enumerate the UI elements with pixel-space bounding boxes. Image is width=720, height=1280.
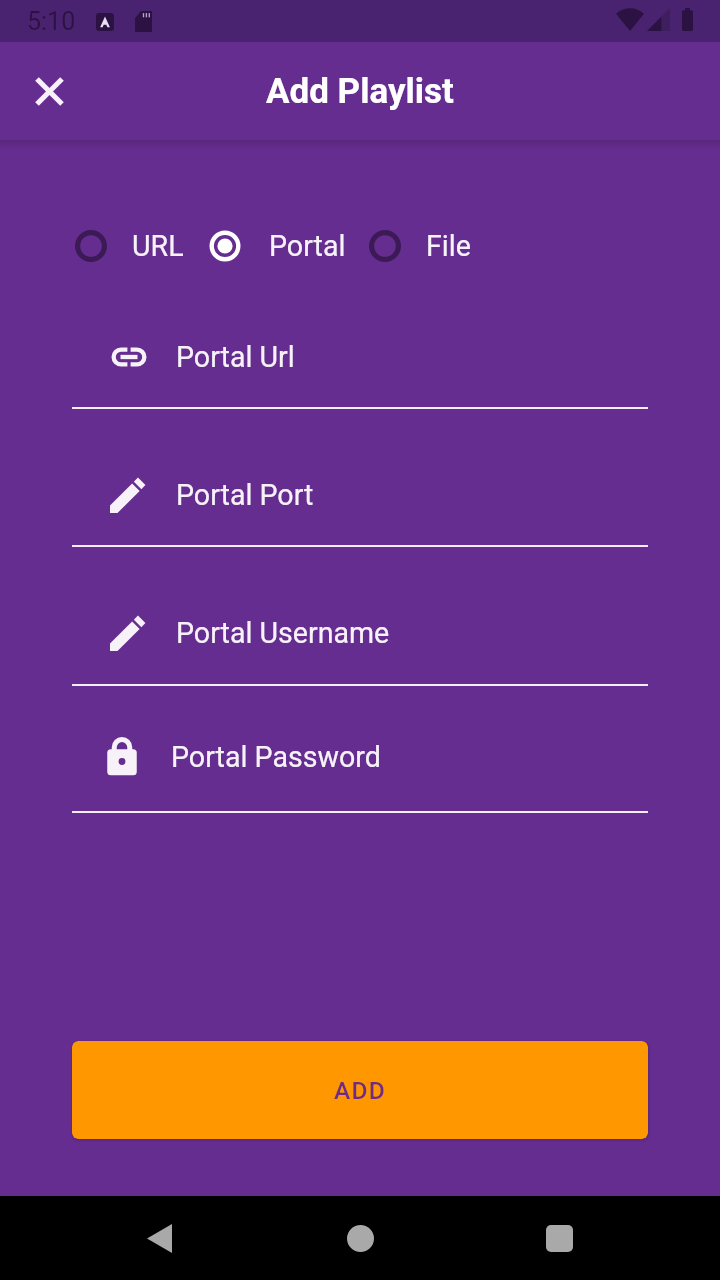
button[interactable]: Recents xyxy=(519,1198,599,1278)
staticText: 5:10 xyxy=(27,7,76,36)
button[interactable]: Portal Port xyxy=(72,455,648,547)
staticText: Portal Port xyxy=(176,478,314,512)
button[interactable]: Portal Password xyxy=(72,717,648,813)
button[interactable]: Back xyxy=(119,1198,199,1278)
staticText: ADD xyxy=(334,1076,386,1105)
staticText: Portal xyxy=(269,229,346,263)
staticText: Add Playlist xyxy=(266,71,454,112)
staticText: Portal Password xyxy=(171,740,381,774)
button[interactable]: URL xyxy=(70,224,194,268)
button[interactable]: Close xyxy=(9,51,89,131)
button[interactable]: Home xyxy=(320,1198,400,1278)
staticText: File xyxy=(426,229,471,263)
button[interactable]: Portal Url xyxy=(72,317,648,409)
staticText: Portal Url xyxy=(176,340,295,374)
button[interactable]: Portal Username xyxy=(72,593,648,686)
button[interactable]: ADD xyxy=(72,1041,648,1139)
staticText: Portal Username xyxy=(176,616,390,650)
button[interactable]: File xyxy=(364,224,481,268)
staticText: URL xyxy=(132,229,184,263)
button[interactable]: Portal xyxy=(204,224,356,268)
